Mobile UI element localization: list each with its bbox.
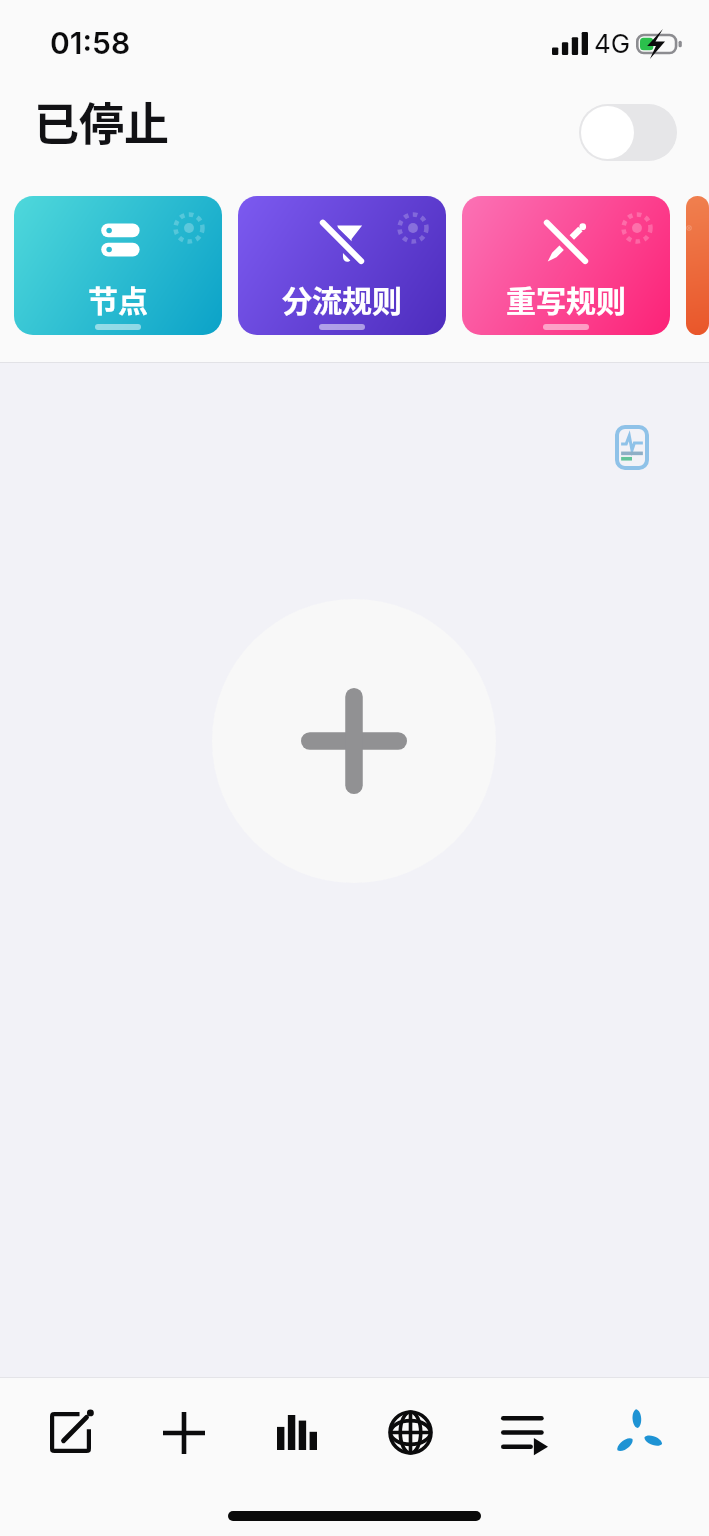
staticText: 4G: [594, 28, 631, 59]
button[interactable]: Compose: [14, 1378, 127, 1487]
button[interactable]: Rules: [467, 1378, 581, 1487]
button[interactable]: 节点: [14, 196, 222, 335]
button[interactable]: Add: [212, 599, 496, 883]
button[interactable]: 重写规则: [462, 196, 670, 335]
staticText: 重写规则: [506, 277, 626, 320]
button[interactable]: More: [581, 1378, 695, 1487]
button[interactable]: Add: [127, 1378, 240, 1487]
button[interactable]: 分流规则: [238, 196, 446, 335]
button[interactable]: Traffic log: [615, 425, 649, 470]
staticText: 节点: [88, 277, 148, 320]
staticText: 分流规则: [282, 277, 402, 320]
staticText: 01:58: [50, 25, 131, 61]
button[interactable]: Power toggle: [579, 104, 677, 161]
staticText: 已停止: [34, 89, 170, 154]
button[interactable]: Web: [353, 1378, 467, 1487]
button[interactable]: Statistics: [240, 1378, 353, 1487]
button[interactable]: [686, 196, 709, 335]
